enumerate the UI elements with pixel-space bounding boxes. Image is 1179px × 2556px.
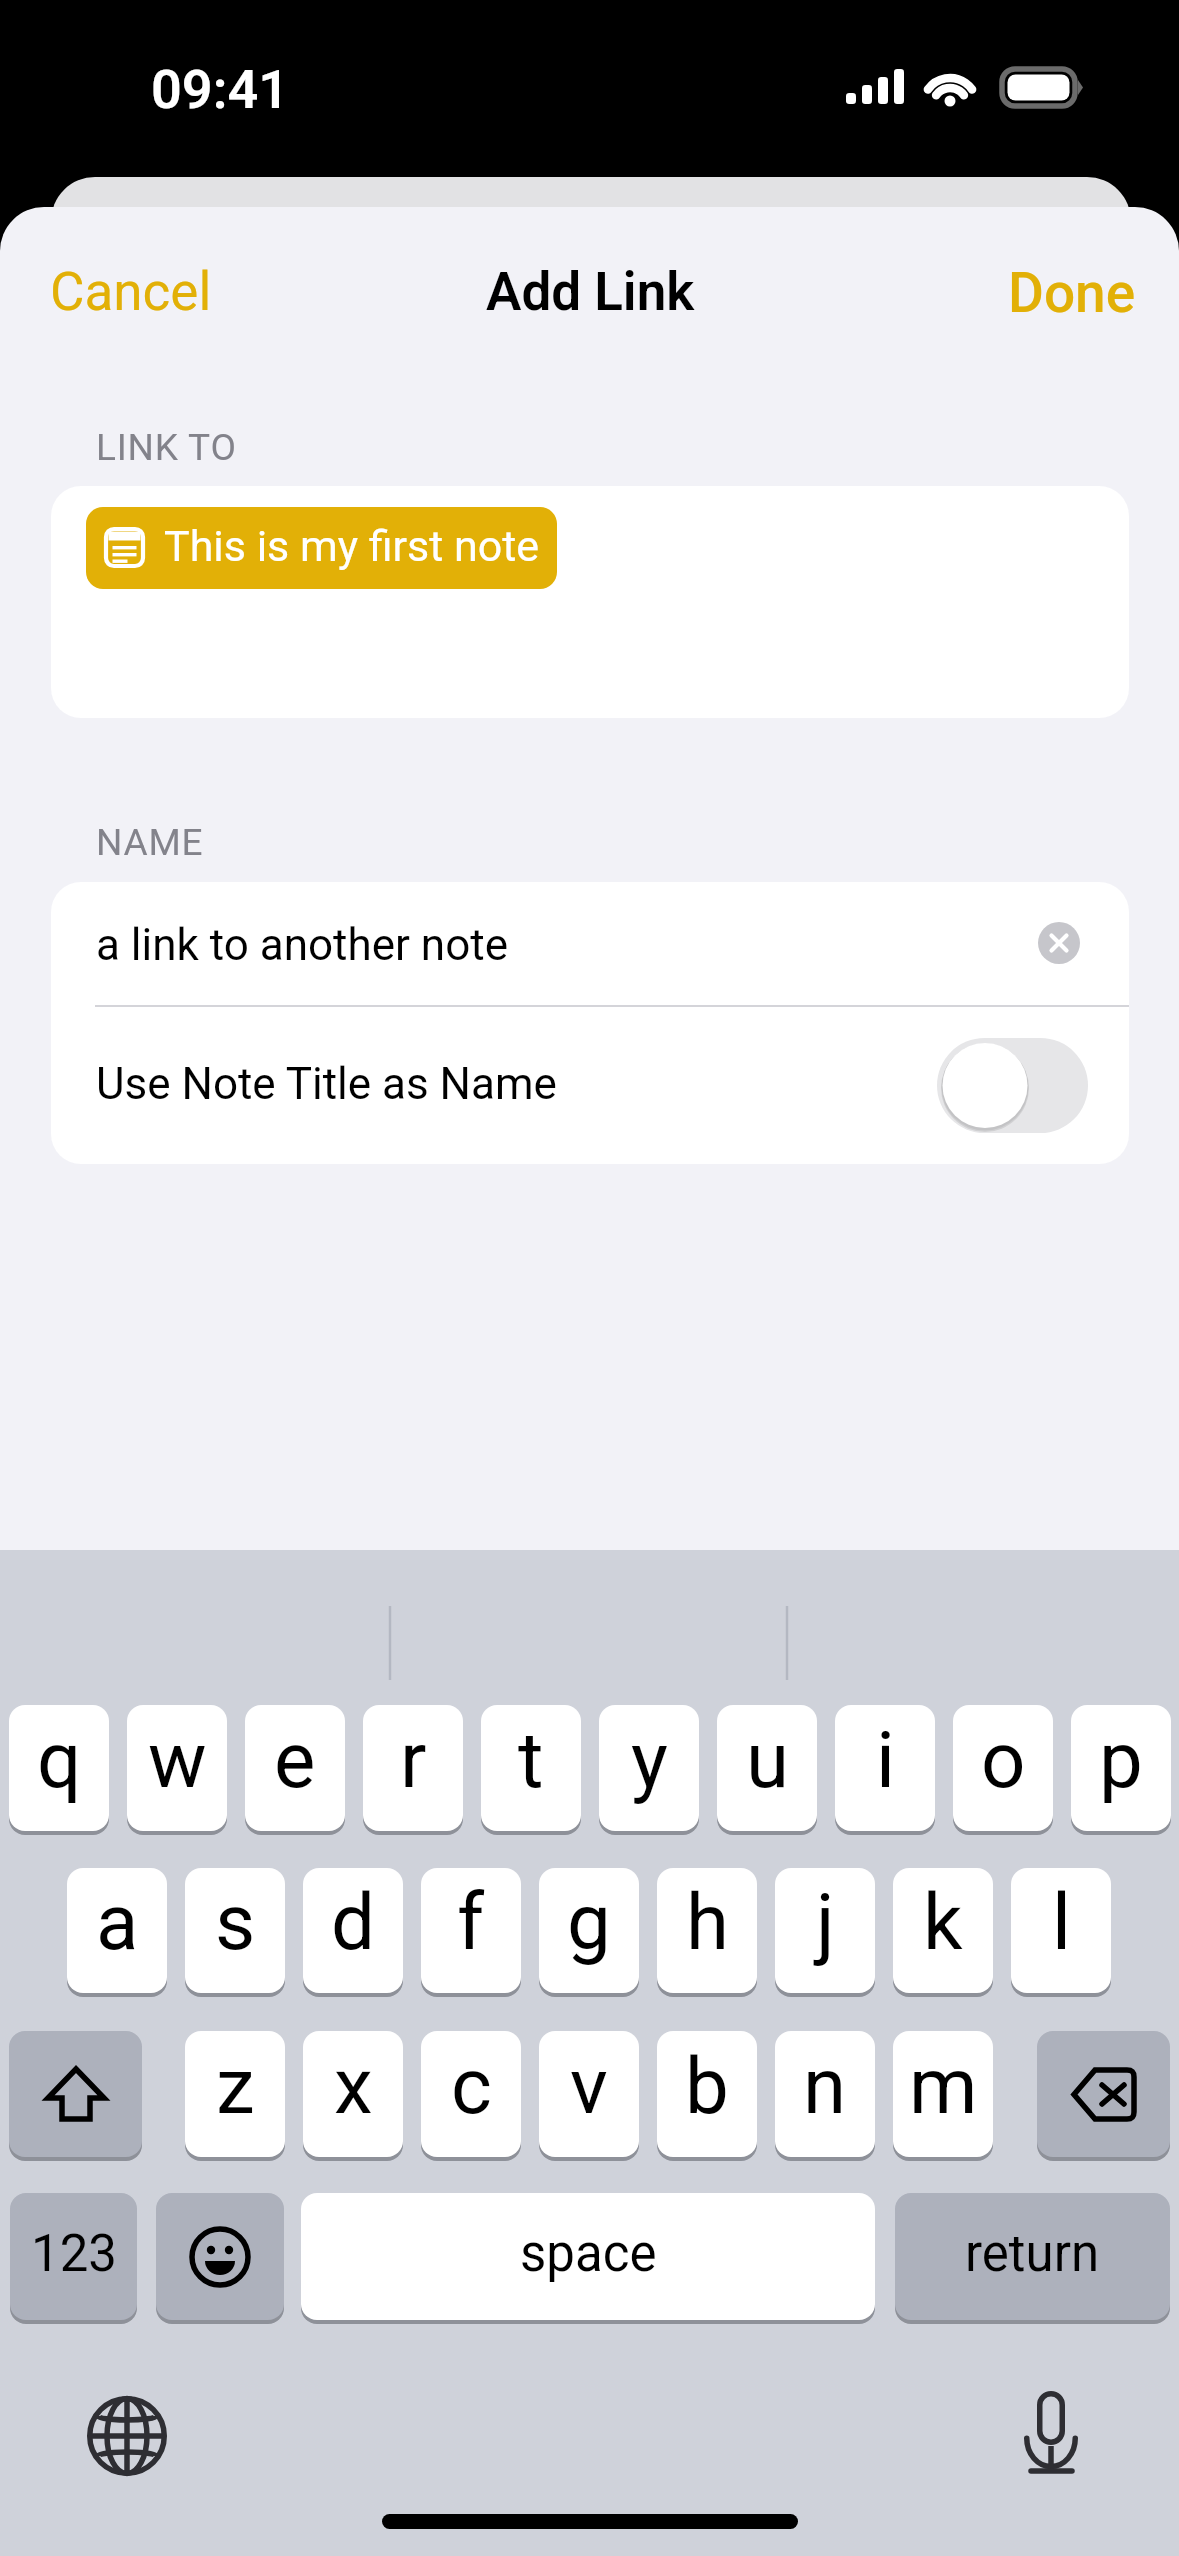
button[interactable]: m — [893, 2031, 993, 2161]
staticText: q — [37, 1715, 82, 1806]
staticText: v — [570, 2041, 608, 2132]
button[interactable]: z — [185, 2031, 285, 2161]
staticText: p — [1099, 1715, 1143, 1806]
button[interactable]: j — [775, 1868, 875, 1997]
button[interactable]: u — [717, 1705, 817, 1835]
button[interactable]: Use Note Title as Name, off — [937, 1038, 1088, 1133]
button[interactable]: Change keyboard — [85, 2390, 169, 2474]
staticText: d — [331, 1877, 375, 1968]
staticText: h — [686, 1877, 729, 1968]
staticText: n — [803, 2041, 847, 2132]
button[interactable]: t — [481, 1705, 581, 1835]
staticText: o — [981, 1715, 1026, 1806]
button[interactable]: Delete — [1037, 2031, 1170, 2161]
button[interactable]: Dictation — [1018, 2388, 1088, 2480]
staticText: k — [923, 1877, 963, 1968]
staticText: r — [400, 1715, 427, 1806]
button[interactable]: s — [185, 1868, 285, 1997]
button[interactable]: Cancel — [0, 250, 300, 336]
staticText: m — [909, 2041, 978, 2132]
staticText: y — [631, 1715, 668, 1806]
staticText: 123 — [31, 2224, 117, 2284]
button[interactable]: a — [67, 1868, 167, 1997]
staticText: s — [215, 1877, 256, 1968]
staticText: z — [216, 2041, 255, 2132]
button[interactable]: x — [303, 2031, 403, 2161]
staticText: NAME — [96, 821, 204, 864]
staticText: u — [746, 1715, 789, 1806]
staticText: j — [816, 1877, 835, 1968]
staticText: Cancel — [50, 261, 212, 323]
staticText: Use Note Title as Name — [96, 1058, 557, 1110]
staticText: g — [567, 1877, 611, 1968]
button[interactable]: v — [539, 2031, 639, 2161]
staticText: This is my first note — [164, 521, 540, 571]
button[interactable]: k — [893, 1868, 993, 1997]
button[interactable]: d — [303, 1868, 403, 1997]
button[interactable]: g — [539, 1868, 639, 1997]
staticText: a link to another note — [96, 919, 508, 971]
staticText: l — [1052, 1877, 1071, 1968]
button[interactable]: h — [657, 1868, 757, 1997]
button[interactable]: l — [1011, 1868, 1111, 1997]
button[interactable]: p — [1071, 1705, 1171, 1835]
button[interactable]: q — [9, 1705, 109, 1835]
button[interactable]: Numbers — [10, 2193, 137, 2324]
button[interactable]: Emoji — [156, 2193, 284, 2324]
button[interactable]: r — [363, 1705, 463, 1835]
button[interactable]: w — [127, 1705, 227, 1835]
staticText: w — [148, 1715, 207, 1806]
staticText: b — [685, 2041, 729, 2132]
staticText: Add Link — [486, 261, 695, 323]
staticText: LINK TO — [96, 426, 237, 469]
button[interactable]: f — [421, 1868, 521, 1997]
staticText: a — [96, 1877, 139, 1968]
button[interactable]: This is my first note — [86, 507, 557, 589]
button[interactable]: o — [953, 1705, 1053, 1835]
button[interactable]: e — [245, 1705, 345, 1835]
staticText: 09:41 — [151, 58, 290, 121]
staticText: e — [274, 1715, 316, 1806]
staticText: c — [451, 2041, 492, 2132]
staticText: x — [334, 2041, 373, 2132]
staticText: f — [457, 1877, 485, 1968]
staticText: return — [965, 2224, 1100, 2284]
button[interactable]: n — [775, 2031, 875, 2161]
button[interactable]: return — [895, 2193, 1170, 2324]
button[interactable]: c — [421, 2031, 521, 2161]
staticText: i — [876, 1715, 895, 1806]
button[interactable]: space — [301, 2193, 875, 2324]
button[interactable]: Use Note Title as Name — [51, 1007, 1129, 1164]
button[interactable]: Clear text — [1038, 922, 1080, 964]
staticText: t — [518, 1715, 544, 1806]
staticText: Done — [1008, 261, 1136, 325]
button[interactable]: i — [835, 1705, 935, 1835]
button[interactable]: y — [599, 1705, 699, 1835]
button[interactable]: Shift — [9, 2031, 142, 2161]
button[interactable]: b — [657, 2031, 757, 2161]
button[interactable]: Done — [929, 250, 1179, 336]
staticText: space — [520, 2224, 657, 2284]
